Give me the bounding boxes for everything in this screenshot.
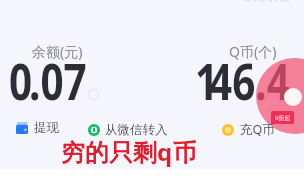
staticText: 0: [9, 47, 32, 115]
staticText: Q币(个): [229, 42, 277, 61]
staticText: 1: [195, 47, 218, 115]
staticText: 充Q币: [240, 121, 275, 138]
staticText: .07: [29, 47, 87, 115]
staticText: 提现: [34, 120, 59, 136]
staticText: 从微信转入: [105, 122, 168, 138]
button[interactable]: 充Q币: [222, 121, 275, 138]
staticText: 46.4: [209, 47, 290, 115]
staticText: 9折起: [275, 114, 291, 122]
button[interactable]: 提现: [16, 120, 59, 136]
staticText: 穷的只剩q币: [61, 135, 197, 168]
staticText: 余额(元): [32, 42, 83, 61]
button[interactable]: 从微信转入: [88, 122, 168, 138]
button[interactable]: Discount badge: [271, 111, 294, 124]
